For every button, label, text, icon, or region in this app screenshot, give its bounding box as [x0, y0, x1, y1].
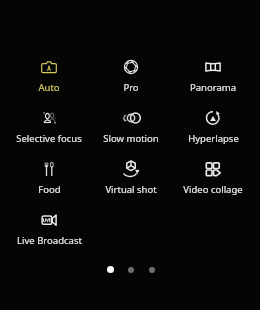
button[interactable]: Auto — [8, 56, 90, 107]
button[interactable]: Panorama — [172, 56, 254, 107]
staticText: Hyperlapse — [188, 132, 239, 145]
button[interactable]: Food — [8, 158, 90, 209]
button[interactable]: Virtual shot — [90, 158, 172, 209]
button[interactable]: Pro — [90, 56, 172, 107]
button[interactable]: Selective focus — [8, 107, 90, 158]
button[interactable]: Live Broadcast — [8, 209, 90, 260]
staticText: Selective focus — [16, 132, 82, 145]
staticText: Video collage — [183, 183, 243, 196]
button[interactable]: Slow motion — [90, 107, 172, 158]
staticText: Panorama — [190, 81, 236, 94]
staticText: Slow motion — [103, 132, 159, 145]
staticText: Auto — [38, 81, 60, 94]
staticText: Pro — [123, 81, 139, 94]
staticText: Live Broadcast — [17, 234, 82, 247]
button[interactable]: Video collage — [172, 158, 254, 209]
button[interactable]: Hyperlapse — [172, 107, 254, 158]
staticText: Virtual shot — [105, 183, 157, 196]
staticText: Food — [38, 183, 61, 196]
